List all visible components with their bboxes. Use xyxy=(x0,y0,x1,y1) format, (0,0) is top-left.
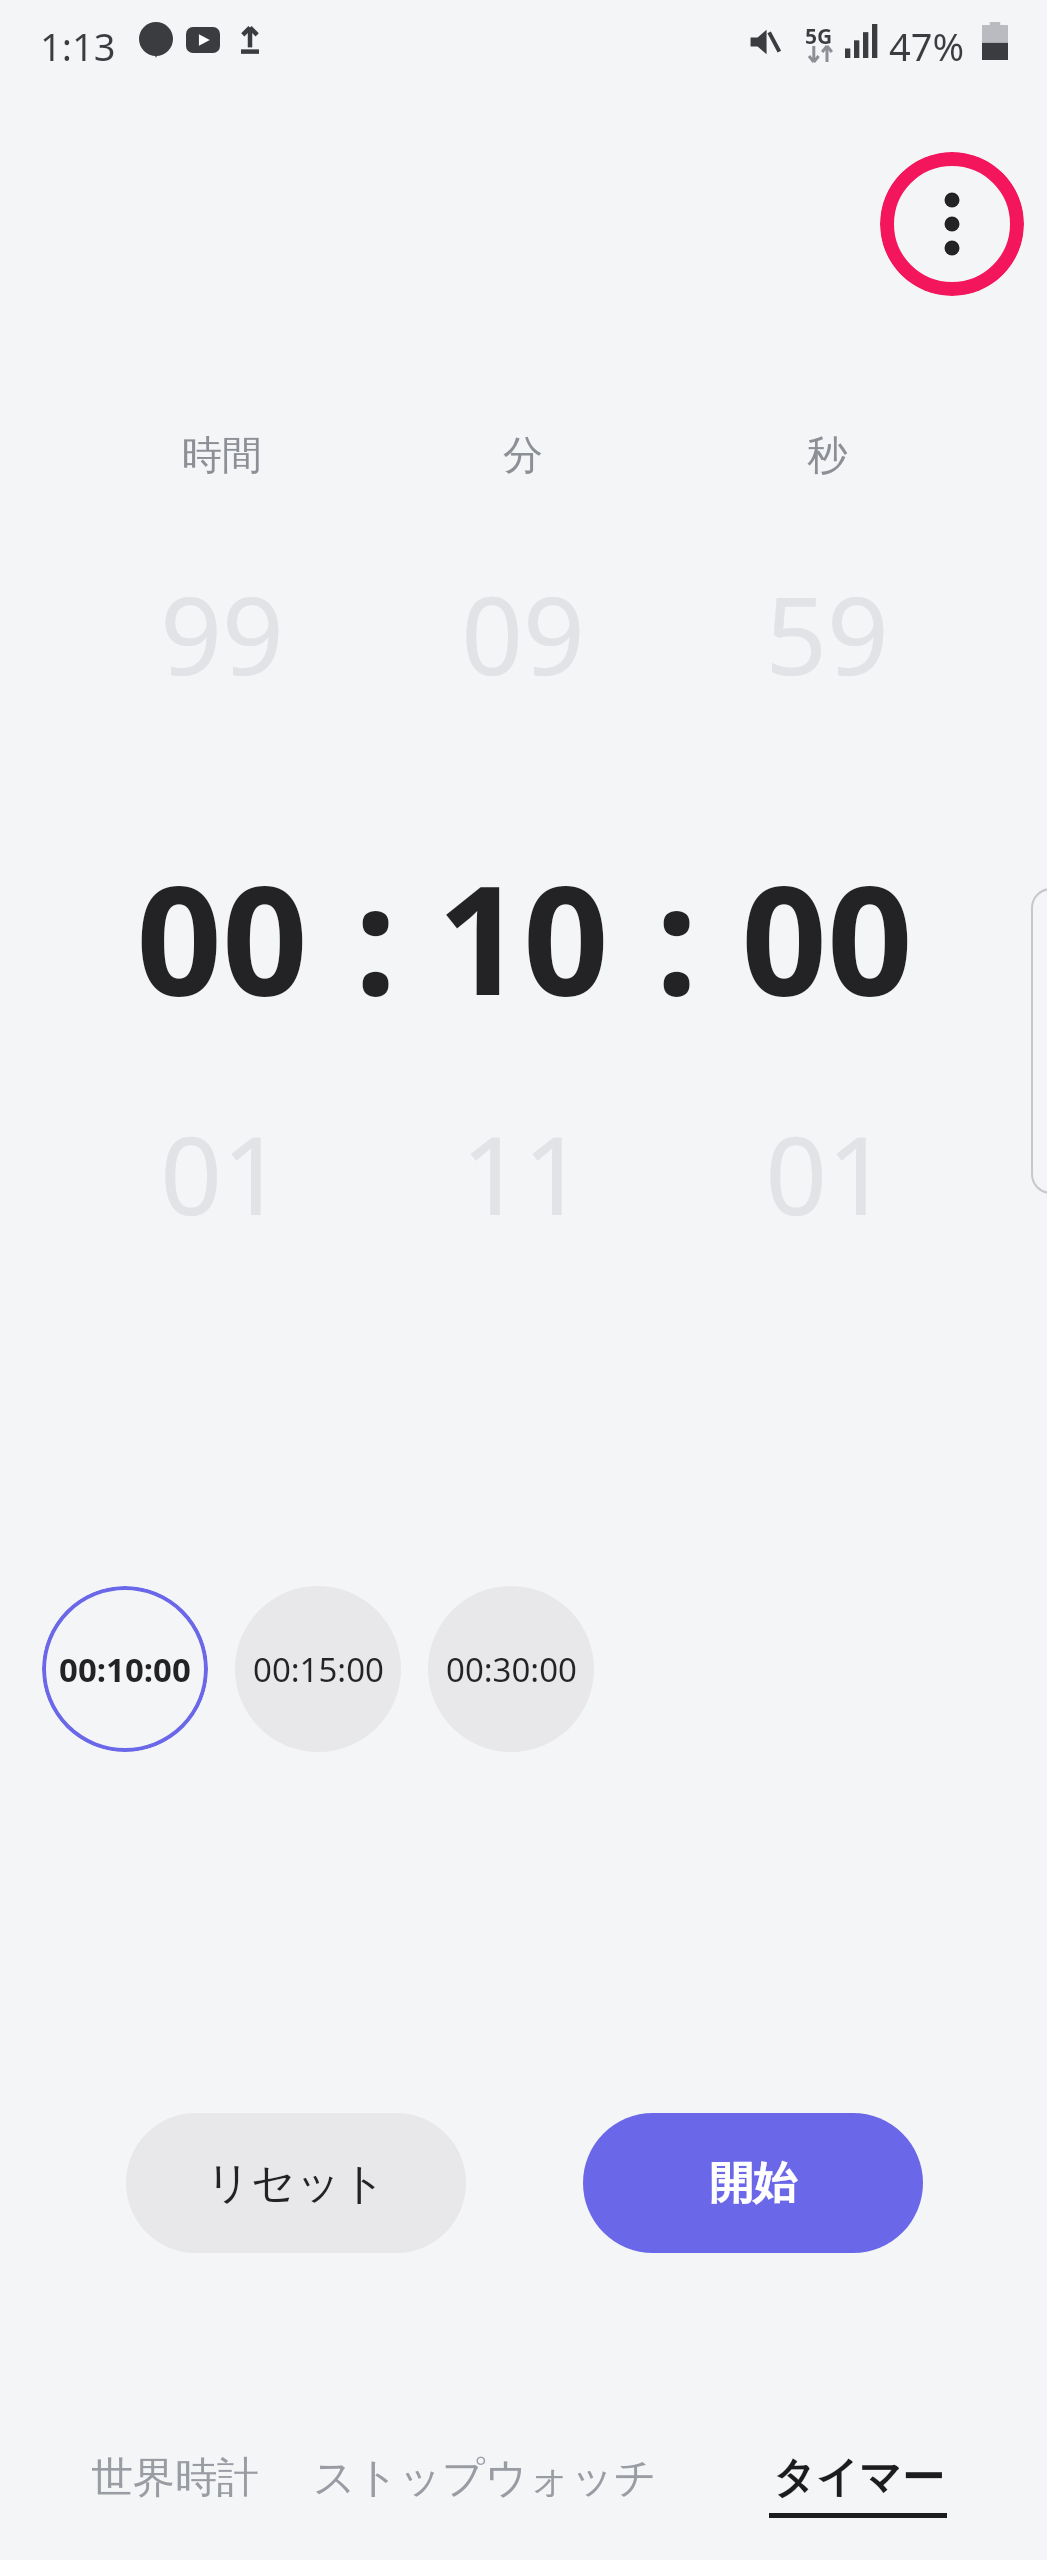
staticText: 59 xyxy=(765,560,889,707)
staticText: 開始 xyxy=(709,2156,797,2211)
button[interactable]: 00:10:00 xyxy=(42,1586,208,1752)
button[interactable]: 00:15:00 xyxy=(235,1586,401,1752)
staticText: 47% xyxy=(889,20,965,72)
button[interactable]: More options xyxy=(880,152,1024,296)
staticText: : xyxy=(354,835,397,1039)
button[interactable]: リセット xyxy=(126,2113,466,2253)
button[interactable]: ストップウォッチ xyxy=(290,2440,680,2550)
staticText: : xyxy=(655,835,698,1039)
staticText: 00 xyxy=(136,835,308,1039)
staticText: 時間 xyxy=(182,430,262,480)
button[interactable]: 開始 xyxy=(583,2113,923,2253)
staticText: 秒 xyxy=(807,430,847,480)
staticText: 00:10:00 xyxy=(59,1647,191,1692)
staticText: 11 xyxy=(461,1100,585,1247)
button[interactable]: 世界時計 xyxy=(75,2440,275,2550)
staticText: 00 xyxy=(741,835,913,1039)
staticText: ストップウォッチ xyxy=(313,2452,657,2505)
staticText: 5G xyxy=(805,22,833,51)
staticText: 01 xyxy=(160,1100,284,1247)
staticText: 09 xyxy=(461,560,585,707)
staticText: 1:13 xyxy=(40,20,116,72)
button[interactable]: 00:30:00 xyxy=(428,1586,594,1752)
staticText: 00:15:00 xyxy=(253,1647,384,1692)
staticText: リセット xyxy=(206,2156,387,2211)
staticText: 分 xyxy=(503,430,543,480)
staticText: 00:30:00 xyxy=(446,1647,577,1692)
button[interactable]: タイマー xyxy=(740,2440,975,2550)
staticText: 01 xyxy=(765,1100,889,1247)
staticText: 99 xyxy=(160,560,284,707)
staticText: タイマー xyxy=(773,2452,944,2505)
staticText: 10 xyxy=(437,835,609,1039)
staticText: 世界時計 xyxy=(91,2452,259,2505)
